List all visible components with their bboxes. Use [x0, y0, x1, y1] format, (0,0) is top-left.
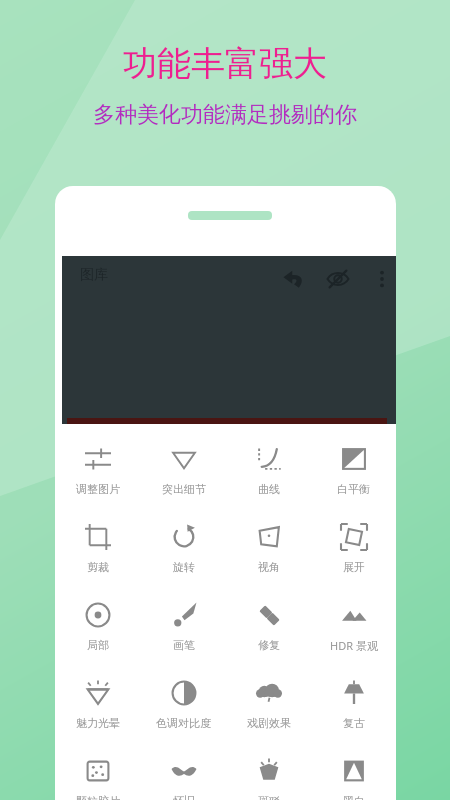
staticText: 局部	[87, 638, 109, 652]
staticText: HDR 景观	[330, 638, 378, 653]
staticText: 修复	[258, 638, 280, 652]
staticText: 多种美化功能满足挑剔的你	[93, 101, 357, 129]
button[interactable]: 调整图片	[55, 436, 141, 514]
button[interactable]: HDR 景观	[311, 592, 396, 670]
button[interactable]: 颗粒胶片	[55, 748, 141, 800]
button[interactable]: 修复	[226, 592, 311, 670]
button[interactable]: 复古	[311, 670, 396, 748]
button[interactable]: 色调对比度	[141, 670, 226, 748]
button[interactable]: 曲线	[226, 436, 311, 514]
staticText: 色调对比度	[156, 716, 211, 730]
button[interactable]: 斑驳	[226, 748, 311, 800]
button[interactable]: 魅力光晕	[55, 670, 141, 748]
staticText: 怀旧	[173, 794, 195, 800]
staticText: 剪裁	[87, 560, 109, 574]
button[interactable]: 怀旧	[141, 748, 226, 800]
staticText: 突出细节	[162, 482, 206, 496]
button[interactable]: 剪裁	[55, 514, 141, 592]
staticText: 颗粒胶片	[76, 794, 120, 800]
staticText: 展开	[343, 560, 365, 574]
staticText: 调整图片	[76, 482, 120, 496]
button[interactable]: Compare	[321, 262, 355, 296]
button[interactable]: 视角	[226, 514, 311, 592]
button[interactable]: Undo	[277, 262, 311, 296]
staticText: 视角	[258, 560, 280, 574]
button[interactable]: 突出细节	[141, 436, 226, 514]
staticText: 黑白	[343, 794, 365, 800]
button[interactable]: 戏剧效果	[226, 670, 311, 748]
button[interactable]: 画笔	[141, 592, 226, 670]
button[interactable]: 黑白	[311, 748, 396, 800]
staticText: 魅力光晕	[76, 716, 120, 730]
staticText: 曲线	[258, 482, 280, 496]
staticText: 画笔	[173, 638, 195, 652]
staticText: 图库	[80, 266, 108, 284]
button[interactable]: 局部	[55, 592, 141, 670]
button[interactable]: 旋转	[141, 514, 226, 592]
button[interactable]: 白平衡	[311, 436, 396, 514]
staticText: 旋转	[173, 560, 195, 574]
staticText: 复古	[343, 716, 365, 730]
staticText: 斑驳	[258, 794, 280, 800]
staticText: 白平衡	[337, 482, 370, 496]
staticText: 功能丰富强大	[123, 42, 327, 85]
staticText: 戏剧效果	[247, 716, 291, 730]
button[interactable]: 展开	[311, 514, 396, 592]
